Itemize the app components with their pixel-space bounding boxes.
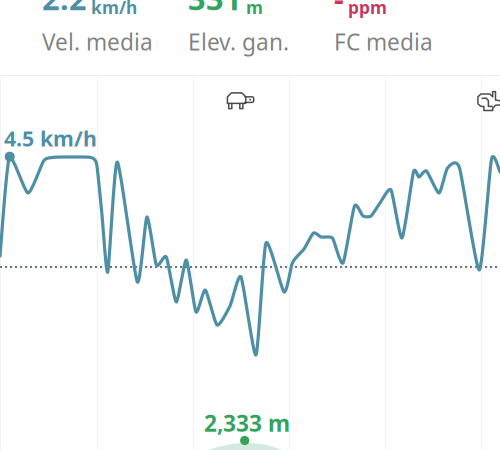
staticText: - [334,0,344,19]
staticText: 4.5 km/h [4,124,97,152]
staticText: Elev. gan. [188,27,289,57]
staticText: Vel. media [42,27,153,57]
staticText: FC media [334,27,433,57]
staticText: km/h [91,0,137,19]
staticText: 331 [188,0,242,19]
staticText: 2.2 [42,0,87,19]
staticText: ppm [348,0,387,19]
staticText: 2,333 m [204,408,290,438]
staticText: m [246,0,263,19]
